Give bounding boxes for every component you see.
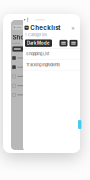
button[interactable]: Tracking Ingredients xyxy=(23,59,80,70)
button[interactable]: Close xyxy=(70,25,76,31)
staticText: Checklist xyxy=(30,24,60,31)
button[interactable]: List view xyxy=(69,40,77,46)
button[interactable]: Dark Mode xyxy=(25,39,52,47)
button[interactable]: Grid view xyxy=(59,40,67,46)
button[interactable]: Shopping List xyxy=(23,48,80,59)
staticText: 1 Categories xyxy=(25,33,47,37)
staticText: Dark Mode xyxy=(27,41,50,46)
staticText: Shopping List xyxy=(26,51,49,56)
staticText: Tracking Ingredients xyxy=(26,62,60,67)
staticText: × xyxy=(71,24,75,31)
staticText: Shopping xyxy=(12,34,42,41)
